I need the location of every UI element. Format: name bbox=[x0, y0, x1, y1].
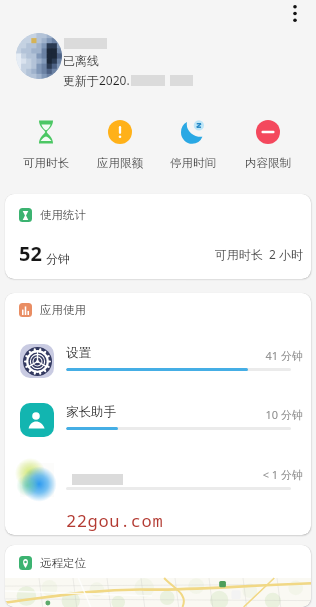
button[interactable]: 可用时长 bbox=[13, 114, 79, 172]
staticText: 远程定位 bbox=[40, 556, 86, 570]
staticText: 22gou.com bbox=[66, 509, 164, 532]
button[interactable]: < 1 分钟 bbox=[5, 463, 311, 499]
staticText: 分钟 bbox=[46, 251, 70, 266]
staticText: 更新于2020. bbox=[63, 72, 130, 88]
staticText: 可用时长 bbox=[23, 156, 69, 170]
staticText: 10 分钟 bbox=[199, 407, 303, 422]
staticText: 使用统计 bbox=[40, 208, 86, 222]
staticText: 41 分钟 bbox=[199, 348, 303, 363]
staticText: < 1 分钟 bbox=[199, 467, 303, 482]
button[interactable]: 内容限制 bbox=[235, 114, 301, 172]
button[interactable]: More options bbox=[278, 0, 312, 34]
button[interactable]: 家长助手 bbox=[5, 403, 311, 439]
staticText: 52 bbox=[19, 240, 42, 267]
button[interactable]: 设置 bbox=[5, 344, 311, 380]
staticText: 应用限额 bbox=[97, 156, 143, 170]
button[interactable]: 应用限额 bbox=[87, 114, 153, 172]
staticText: 应用使用 bbox=[40, 303, 86, 317]
staticText: 家长助手 bbox=[66, 404, 116, 420]
staticText: 可用时长 2 小时 bbox=[199, 246, 303, 262]
staticText: 内容限制 bbox=[245, 156, 291, 170]
button[interactable]: 停用时间 bbox=[160, 114, 226, 172]
button[interactable]: Open map location bbox=[5, 578, 311, 607]
staticText: 已离线 bbox=[63, 53, 99, 68]
button[interactable]: Profile avatar bbox=[16, 33, 62, 79]
staticText: 设置 bbox=[66, 345, 91, 361]
staticText: 停用时间 bbox=[170, 156, 216, 170]
